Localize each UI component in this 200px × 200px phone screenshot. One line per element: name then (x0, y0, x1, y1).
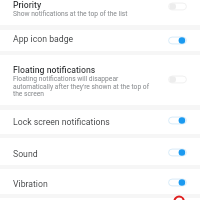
button[interactable]: Priority (0, 0, 200, 25)
staticText: Priority (13, 0, 42, 10)
button[interactable]: Switch on (168, 146, 187, 159)
button[interactable]: Switch on (168, 114, 187, 127)
button[interactable]: Switch on (168, 176, 187, 189)
button[interactable]: Floating notifications (0, 55, 200, 105)
staticText: Lock screen notifications (13, 117, 110, 127)
staticText: Floating notifications will disappear au… (13, 75, 151, 97)
button[interactable]: Lock screen notifications (0, 109, 200, 134)
staticText: Floating notifications (13, 65, 96, 75)
button[interactable]: Switch off (168, 73, 187, 86)
button[interactable]: Sound (0, 138, 200, 165)
button[interactable]: Switch off (168, 0, 187, 13)
button[interactable]: Switch on (168, 34, 187, 47)
button[interactable]: App icon badge (0, 29, 200, 51)
staticText: App icon badge (13, 34, 74, 44)
staticText: Show notifications at the top of the lis… (13, 10, 128, 18)
staticText: Sound (13, 149, 38, 159)
staticText: Vibration (13, 179, 48, 189)
button[interactable]: Vibration (0, 169, 200, 195)
